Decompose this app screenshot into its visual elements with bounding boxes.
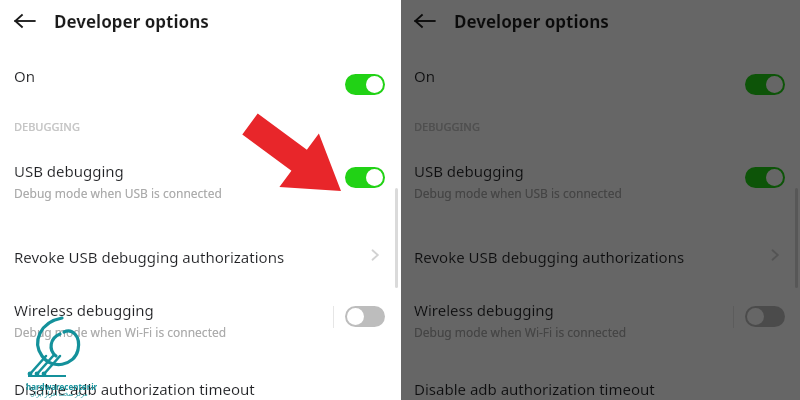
staticText: USB debugging [14, 161, 124, 181]
button[interactable]: Revoke USB debugging authorizations [400, 243, 800, 267]
button[interactable]: Disable adb authorization timeout [400, 375, 800, 395]
staticText: hardwarecenter.ir [26, 381, 98, 392]
button[interactable]: Toggle on [345, 74, 385, 95]
button[interactable]: On [0, 58, 400, 94]
button[interactable]: Disable adb authorization timeout [0, 375, 400, 395]
staticText: Wireless debugging [14, 300, 154, 320]
staticText: Revoke USB debugging authorizations [14, 247, 285, 267]
staticText: DEBUGGING [14, 119, 80, 134]
button[interactable]: USB debugging [400, 155, 800, 188]
staticText: Developer options [54, 10, 209, 33]
button[interactable]: Wireless debugging [0, 300, 400, 322]
button[interactable]: Open [763, 243, 787, 267]
button[interactable]: Toggle on [745, 167, 785, 188]
staticText: DEBUGGING [414, 119, 480, 134]
button[interactable]: On [400, 58, 800, 94]
button[interactable]: USB debugging [0, 155, 400, 188]
button[interactable]: Toggle on [345, 167, 385, 188]
staticText: On [414, 66, 435, 86]
button[interactable]: Open [363, 243, 387, 267]
button[interactable]: Toggle on [745, 74, 785, 95]
staticText: Debug mode when USB is connected [414, 185, 622, 201]
staticText: Debug mode when Wi-Fi is connected [414, 324, 627, 340]
staticText: Revoke USB debugging authorizations [414, 247, 685, 267]
staticText: Wireless debugging [414, 300, 554, 320]
button[interactable]: Toggle off [745, 306, 785, 327]
staticText: Disable adb authorization timeout [14, 379, 255, 399]
staticText: USB debugging [414, 161, 524, 181]
button[interactable]: Revoke USB debugging authorizations [0, 243, 400, 267]
staticText: On [14, 66, 35, 86]
button[interactable]: Back [8, 4, 42, 38]
button[interactable]: Back [408, 4, 442, 38]
staticText: Developer options [454, 10, 609, 33]
button[interactable]: Toggle off [345, 306, 385, 327]
staticText: مرکز سخت افزار ایران [30, 390, 88, 398]
button[interactable]: Wireless debugging [400, 300, 800, 322]
staticText: Disable adb authorization timeout [414, 379, 655, 399]
staticText: Debug mode when Wi-Fi is connected [14, 324, 227, 340]
staticText: Debug mode when USB is connected [14, 185, 222, 201]
